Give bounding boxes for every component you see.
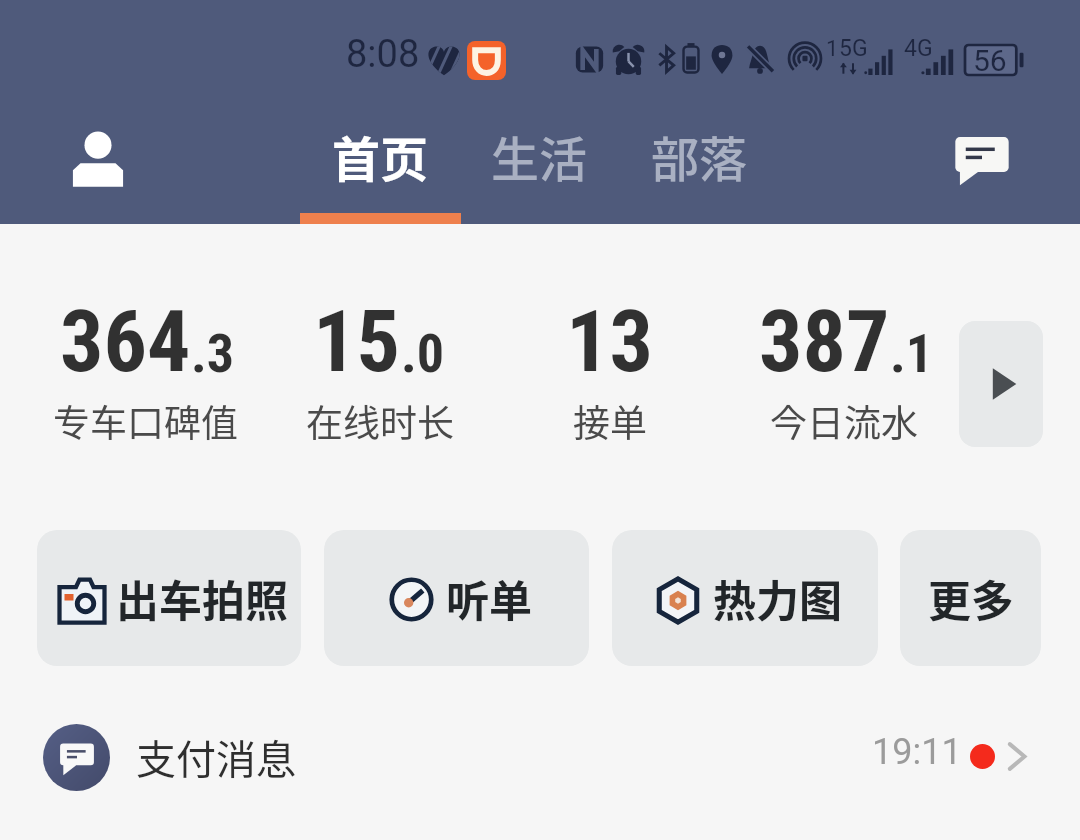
staticText: 364: [60, 291, 191, 392]
button[interactable]: 更多: [900, 530, 1041, 666]
staticText: 出车拍照: [116, 567, 288, 629]
staticText: 56: [973, 43, 1007, 73]
staticText: 在线时长: [306, 394, 454, 448]
button[interactable]: 出车拍照: [37, 530, 301, 666]
staticText: 今日流水: [770, 394, 918, 448]
staticText: 387: [759, 291, 890, 392]
staticText: 听单: [446, 567, 532, 629]
staticText: 更多: [928, 567, 1014, 629]
staticText: .1: [890, 322, 934, 385]
staticText: 部落: [651, 121, 748, 191]
button[interactable]: 部落: [632, 108, 766, 204]
staticText: 5G: [839, 35, 868, 62]
staticText: 生活: [491, 121, 588, 191]
staticText: 1: [826, 36, 839, 62]
button[interactable]: 生活: [472, 108, 606, 204]
button[interactable]: 听单: [324, 530, 589, 666]
staticText: 热力图: [713, 567, 842, 629]
button[interactable]: Messages: [939, 115, 1025, 201]
staticText: 专车口碑值: [53, 394, 238, 448]
button[interactable]: 热力图: [612, 530, 878, 666]
staticText: .3: [191, 322, 235, 385]
staticText: 4G: [904, 35, 933, 62]
staticText: .0: [401, 322, 445, 385]
staticText: 首页: [332, 121, 429, 191]
staticText: 13: [566, 291, 654, 392]
button[interactable]: Profile: [56, 117, 140, 201]
staticText: 15: [313, 291, 401, 392]
staticText: 19:11: [872, 731, 962, 773]
button[interactable]: 首页: [313, 108, 447, 204]
button[interactable]: Play audio: [959, 321, 1043, 447]
button[interactable]: 支付消息: [0, 694, 1080, 822]
staticText: 接单: [573, 394, 647, 448]
staticText: 8:08: [346, 32, 420, 77]
staticText: 支付消息: [136, 728, 296, 786]
